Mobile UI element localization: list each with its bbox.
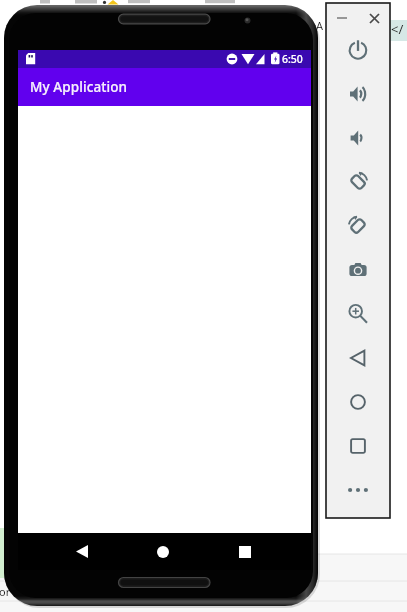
button[interactable]: Minimize	[326, 3, 358, 33]
button[interactable]: Home	[342, 386, 374, 418]
button[interactable]: Volume down	[342, 122, 374, 154]
staticText: </	[391, 20, 404, 38]
button[interactable]: Back	[62, 533, 102, 570]
button[interactable]: Close	[358, 3, 390, 33]
button[interactable]: Zoom	[342, 298, 374, 330]
staticText: or	[0, 584, 11, 599]
button[interactable]: Overview	[342, 430, 374, 462]
staticText: 6:50	[282, 52, 303, 66]
button[interactable]: Recent apps	[225, 533, 265, 570]
button[interactable]: My Application	[18, 68, 311, 106]
button[interactable]: Power	[342, 34, 374, 66]
button[interactable]: Volume up	[342, 78, 374, 110]
button[interactable]: Home	[143, 533, 183, 570]
button[interactable]: Rotate left	[342, 166, 374, 198]
button[interactable]: Rotate right	[342, 210, 374, 242]
button[interactable]: More	[342, 474, 374, 506]
button[interactable]: Back	[342, 342, 374, 374]
button[interactable]: Take screenshot	[342, 254, 374, 286]
staticText: A	[316, 18, 324, 33]
staticText: My Application	[30, 78, 128, 96]
